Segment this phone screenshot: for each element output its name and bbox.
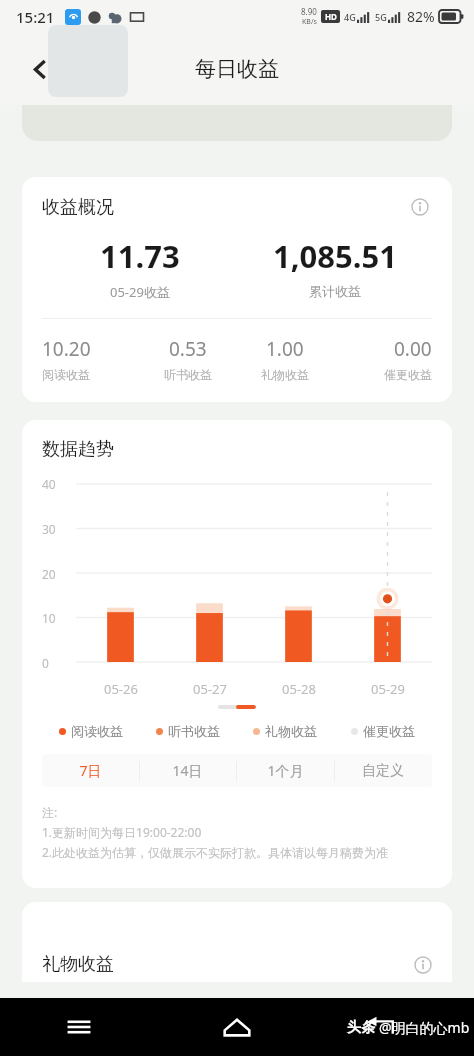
button[interactable]: 听书收益 bbox=[139, 723, 236, 739]
staticText: 催更收益 bbox=[384, 367, 432, 382]
staticText: 阅读收益 bbox=[42, 367, 90, 382]
staticText: 05-27 bbox=[193, 680, 227, 698]
staticText: 30 bbox=[42, 521, 56, 537]
staticText: 1,085.51 bbox=[273, 235, 397, 277]
staticText: 礼物收益 bbox=[265, 723, 317, 739]
staticText: 礼物收益 bbox=[42, 953, 114, 976]
staticText: 0.00 bbox=[394, 336, 432, 362]
button[interactable]: 催更收益 bbox=[334, 723, 432, 739]
staticText: 11.73 bbox=[100, 235, 180, 277]
staticText: @明白的心mb bbox=[379, 1018, 470, 1037]
staticText: 15:21 bbox=[16, 7, 55, 27]
button[interactable]: 自定义 bbox=[334, 754, 432, 787]
staticText: 1个月 bbox=[267, 761, 304, 780]
button[interactable]: Home bbox=[158, 998, 316, 1056]
staticText: 8.90 bbox=[301, 6, 317, 17]
staticText: 10 bbox=[42, 610, 56, 626]
staticText: 82% bbox=[407, 7, 435, 26]
staticText: 自定义 bbox=[362, 762, 404, 780]
staticText: 累计收益 bbox=[309, 283, 361, 299]
staticText: 05-29 bbox=[371, 680, 405, 698]
button[interactable]: 礼物收益 bbox=[236, 723, 334, 739]
staticText: 收益概况 bbox=[42, 196, 114, 219]
button[interactable]: 1.00 bbox=[236, 336, 334, 382]
button[interactable]: 14日 bbox=[139, 754, 236, 787]
staticText: 0.53 bbox=[169, 336, 207, 362]
staticText: 5G bbox=[375, 11, 387, 23]
staticText: 2.此处收益为估算，仅做展示不实际打款。具体请以每月稿费为准 bbox=[42, 844, 389, 860]
staticText: HD bbox=[325, 11, 337, 22]
staticText: 05-26 bbox=[104, 680, 138, 698]
staticText: 0 bbox=[42, 655, 49, 671]
staticText: 听书收益 bbox=[168, 723, 220, 739]
staticText: 20 bbox=[42, 566, 56, 582]
staticText: 注: bbox=[42, 804, 58, 820]
button[interactable]: 礼物收益 bbox=[22, 902, 452, 982]
staticText: KB/s bbox=[302, 17, 317, 27]
staticText: 05-28 bbox=[282, 680, 316, 698]
button[interactable]: Info bbox=[408, 195, 432, 219]
staticText: 05-29收益 bbox=[110, 283, 170, 301]
staticText: 10.20 bbox=[42, 336, 91, 362]
button[interactable]: 阅读收益 bbox=[42, 723, 139, 739]
button[interactable]: 0.53 bbox=[139, 336, 236, 382]
button[interactable]: Back bbox=[316, 998, 474, 1056]
staticText: 1.更新时间为每日19:00-22:00 bbox=[42, 824, 202, 840]
staticText: 14日 bbox=[172, 761, 203, 780]
staticText: 听书收益 bbox=[164, 367, 212, 382]
button[interactable]: Recents bbox=[0, 998, 158, 1056]
staticText: 头条 bbox=[347, 1019, 375, 1037]
staticText: 阅读收益 bbox=[71, 723, 123, 739]
staticText: 7日 bbox=[79, 761, 102, 780]
button[interactable]: 1个月 bbox=[236, 754, 334, 787]
staticText: 1.00 bbox=[266, 336, 304, 362]
button[interactable]: 7日 bbox=[42, 754, 139, 787]
staticText: 4G bbox=[344, 11, 356, 23]
staticText: 数据趋势 bbox=[42, 438, 114, 461]
staticText: 40 bbox=[42, 476, 56, 492]
staticText: 每日收益 bbox=[195, 56, 279, 82]
button[interactable]: Back bbox=[18, 47, 62, 91]
button[interactable]: 0.00 bbox=[334, 336, 432, 382]
staticText: 礼物收益 bbox=[261, 367, 309, 382]
button[interactable]: 10.20 bbox=[42, 336, 139, 382]
staticText: 催更收益 bbox=[363, 723, 415, 739]
